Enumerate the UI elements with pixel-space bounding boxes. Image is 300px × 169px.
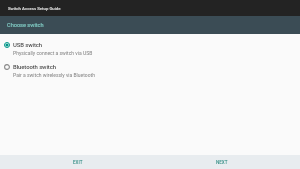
staticText: Bluetooth switch	[13, 63, 56, 70]
staticText: EXIT	[73, 160, 83, 165]
staticText: Switch Access Setup Guide	[8, 6, 61, 11]
other: Selected	[4, 42, 10, 48]
button[interactable]: Selected	[0, 38, 300, 58]
staticText: Choose switch	[7, 22, 44, 29]
staticText: USB switch	[13, 41, 43, 48]
button[interactable]: Not selected	[0, 60, 300, 80]
staticText: Physically connect a switch via USB	[13, 50, 93, 56]
staticText: Pair a switch wirelessly via Bluetooth	[13, 72, 95, 78]
button[interactable]: EXIT	[6, 155, 150, 169]
other: Not selected	[4, 64, 10, 70]
button[interactable]: NEXT	[150, 155, 294, 169]
staticText: NEXT	[216, 160, 228, 165]
